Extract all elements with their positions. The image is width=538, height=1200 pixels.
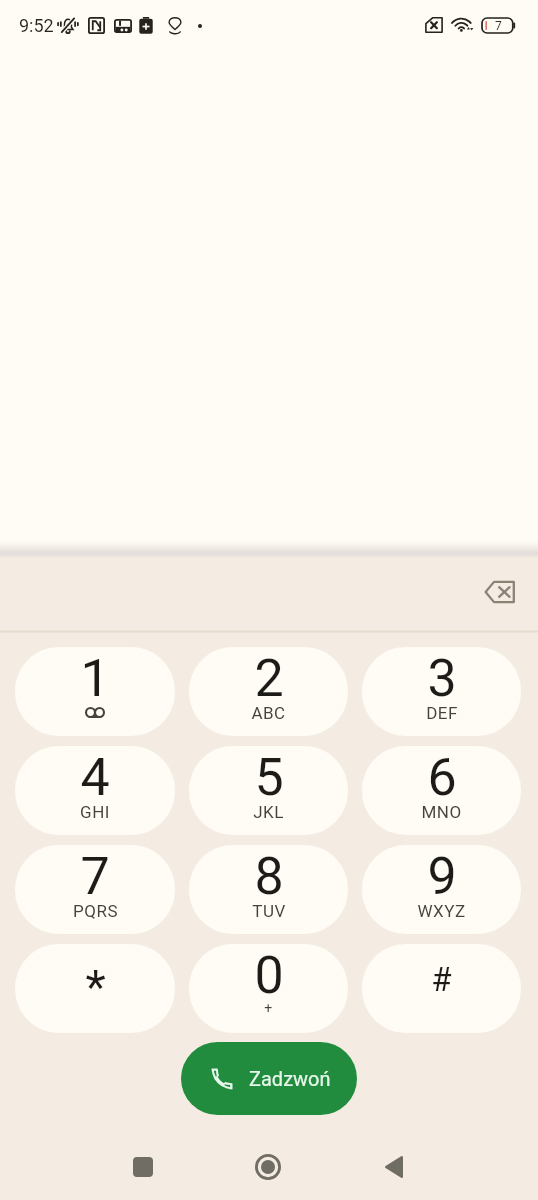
staticText: PQRS [73,901,118,921]
staticText: 4 [80,747,110,808]
button[interactable]: # [362,944,521,1033]
button[interactable]: 2 [189,647,348,736]
staticText: # [431,960,452,999]
staticText: 3 [427,648,457,709]
button[interactable]: 9 [362,845,521,934]
staticText: 7 [495,19,502,33]
button[interactable]: 0 [189,944,348,1033]
button[interactable]: 5 [189,746,348,835]
staticText: JKL [253,802,284,822]
button[interactable]: 4 [15,746,175,835]
button[interactable]: 6 [362,746,521,835]
staticText: 6 [427,747,457,808]
staticText: * [85,959,106,1014]
staticText: 5 [254,747,284,808]
button[interactable]: 3 [362,647,521,736]
staticText: GHI [80,802,110,822]
staticText: 1 [80,648,110,709]
button[interactable]: 7 [15,845,175,934]
button[interactable]: 8 [189,845,348,934]
staticText: 8 [254,846,284,907]
button[interactable]: Backspace [474,566,526,618]
staticText: Zadzwoń [249,1067,331,1090]
staticText: + [264,1000,273,1016]
staticText: TUV [252,901,286,921]
staticText: DEF [426,703,458,723]
staticText: WXYZ [417,901,466,921]
button[interactable]: Home [224,1134,312,1200]
button[interactable]: Back [350,1134,438,1200]
staticText: 0 [254,945,284,1006]
staticText: 7 [80,846,110,907]
staticText: 9 [427,846,457,907]
staticText: MNO [421,802,462,822]
button[interactable]: 1 [15,647,175,736]
staticText: ABC [251,703,286,723]
button[interactable]: * [15,944,175,1033]
button[interactable]: Zadzwoń [181,1042,357,1115]
staticText: 2 [254,648,284,709]
staticText: 9:52 [19,15,54,36]
button[interactable]: Recent apps [99,1134,187,1200]
